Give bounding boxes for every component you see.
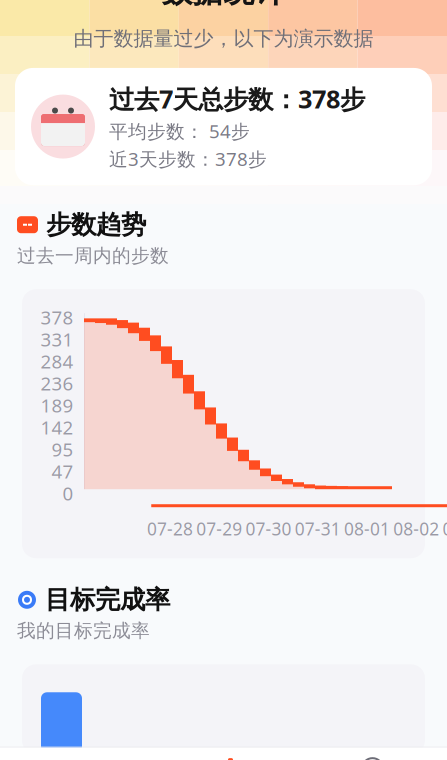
staticText: 142 [40,415,73,440]
staticText: 平均步数： 54步 [109,119,250,143]
staticText: 08-01 [344,517,390,540]
staticText: 47 [51,459,73,484]
staticText: 95 [51,437,73,462]
staticText: 07-28 [147,517,193,540]
staticText: 由于数据量过少，以下为演示数据 [73,26,373,51]
staticText: 08-02 [393,517,439,540]
staticText: 331 [40,327,73,352]
staticText: 过去一周内的步数 [17,244,169,267]
staticText: 近3天步数：378步 [109,146,267,171]
staticText: 07-31 [295,517,341,540]
staticText: 07-29 [196,517,242,540]
button[interactable]: 统计 [149,748,298,760]
staticText: 我的目标完成率 [17,619,150,642]
staticText: 过去7天总步数：378步 [109,82,365,116]
button[interactable]: 我的 [298,748,447,760]
staticText: 189 [40,393,73,418]
staticText: 08-03 [443,517,447,540]
staticText: 0 [62,481,73,506]
staticText: 378 [40,305,73,330]
staticText: 284 [40,349,73,374]
staticText: 步数趋势 [46,209,146,240]
staticText: 数据统计 [161,0,285,10]
staticText: 236 [40,371,73,396]
staticText: 07-30 [245,517,291,540]
staticText: 目标完成率 [45,584,170,615]
